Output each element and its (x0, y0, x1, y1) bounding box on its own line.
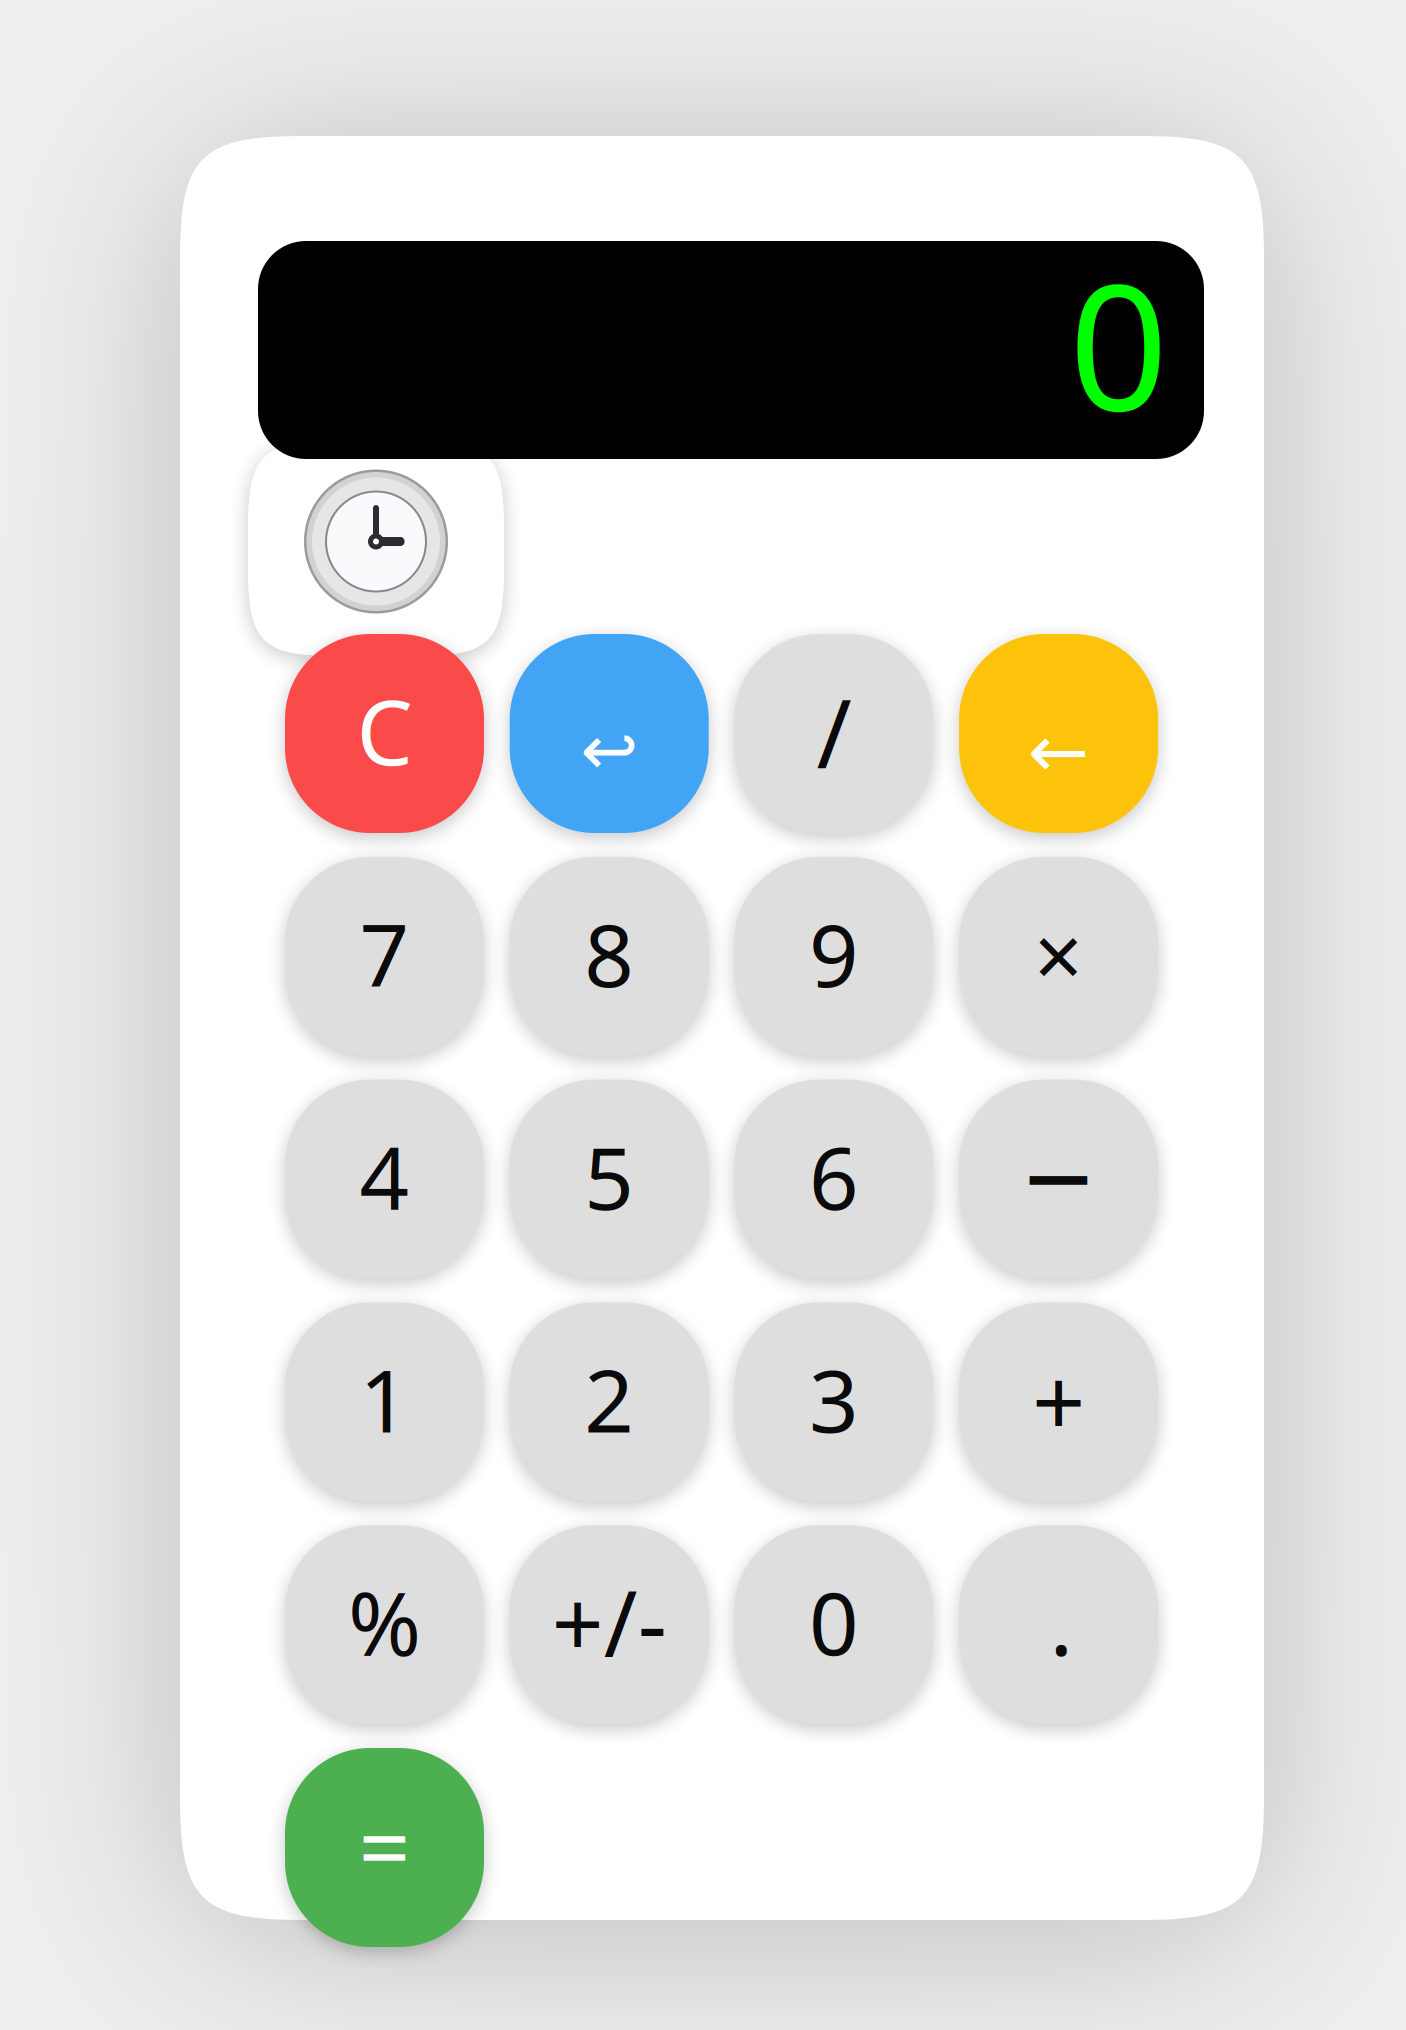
staticText: / (816, 669, 851, 794)
button[interactable]: 2 (510, 1302, 709, 1501)
button[interactable]: 3 (734, 1302, 933, 1501)
staticText: 0 (809, 1564, 859, 1679)
staticText: 5 (584, 1119, 634, 1234)
staticText: C (356, 671, 412, 790)
staticText: × (1034, 898, 1083, 1011)
button[interactable]: Percent (285, 1525, 484, 1724)
staticText: + (1032, 1338, 1085, 1462)
button[interactable]: 6 (734, 1080, 933, 1279)
button[interactable]: 0 (734, 1525, 933, 1724)
staticText: 9 (809, 896, 859, 1011)
button[interactable]: Enter (510, 634, 709, 833)
button[interactable]: History (248, 441, 504, 656)
staticText: % (348, 1563, 421, 1680)
staticText: 4 (359, 1119, 409, 1234)
staticText: +/- (552, 1561, 667, 1682)
staticText: 2 (584, 1341, 634, 1456)
button[interactable]: Decimal point (959, 1525, 1158, 1724)
button[interactable]: 5 (510, 1080, 709, 1279)
staticText: 0 (1069, 228, 1168, 458)
button[interactable]: Plus (959, 1302, 1158, 1501)
button[interactable]: Multiply (959, 857, 1158, 1056)
button[interactable]: Divide (734, 634, 933, 833)
staticText: ↩ (580, 711, 638, 790)
staticText: = (358, 1785, 410, 1906)
button[interactable]: Minus (959, 1080, 1158, 1279)
button[interactable]: Backspace (959, 634, 1158, 833)
staticText: . (1050, 1563, 1074, 1680)
button[interactable]: Plus minus (510, 1525, 709, 1724)
staticText: 8 (584, 896, 634, 1011)
staticText: 7 (359, 896, 409, 1011)
button[interactable]: 4 (285, 1080, 484, 1279)
button[interactable]: Clear (285, 634, 484, 833)
staticText: 1 (359, 1341, 409, 1456)
staticText: − (1024, 1095, 1094, 1258)
button[interactable]: 1 (285, 1302, 484, 1501)
button[interactable]: 8 (510, 857, 709, 1056)
button[interactable]: Equals (285, 1748, 484, 1947)
staticText: 6 (809, 1119, 859, 1234)
staticText: 3 (809, 1341, 859, 1456)
staticText: ← (1028, 710, 1089, 793)
button[interactable]: 7 (285, 857, 484, 1056)
button[interactable]: 9 (734, 857, 933, 1056)
